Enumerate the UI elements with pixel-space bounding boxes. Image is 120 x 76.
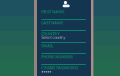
button[interactable]: PHONE NUMBER (41, 54, 91, 65)
staticText: Select country (41, 35, 65, 40)
staticText: CREATE PASSWORD (41, 65, 78, 70)
staticText: FIRST NAME (41, 9, 64, 14)
staticText: ••••• (41, 69, 51, 76)
button[interactable]: COUNTRY (41, 31, 91, 43)
button[interactable]: FIRST NAME (41, 9, 91, 20)
staticText: LAST NAME (41, 20, 63, 25)
button[interactable]: LAST NAME (41, 20, 91, 31)
button[interactable]: CREATE PASSWORD (41, 65, 91, 76)
staticText: EMAIL (41, 43, 53, 48)
button[interactable]: EMAIL (41, 43, 91, 54)
staticText: PHONE NUMBER (41, 54, 73, 59)
staticText: COUNTRY (41, 31, 59, 36)
